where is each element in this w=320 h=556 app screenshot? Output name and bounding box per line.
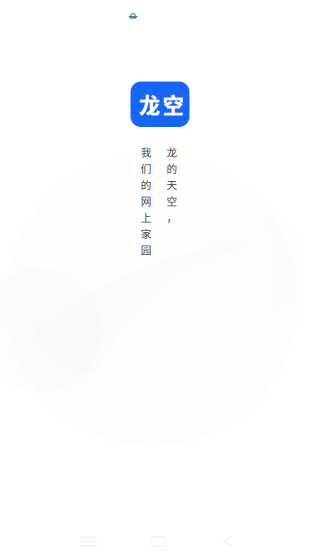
staticText: 天 (166, 177, 177, 192)
staticText: 网 (141, 193, 152, 208)
staticText: 们 (141, 160, 152, 176)
staticText: 家 (141, 226, 152, 241)
staticText: 的 (166, 160, 177, 176)
staticText: 园 (141, 242, 152, 257)
staticText: 龙 (166, 144, 177, 159)
staticText: 我 (141, 144, 152, 159)
staticText: 的 (141, 177, 152, 192)
staticText: 空 (166, 193, 177, 208)
staticText: 上 (141, 209, 152, 225)
staticText: 龙空 (139, 89, 183, 120)
button[interactable]: Recents (66, 526, 110, 556)
staticText: ， (166, 209, 177, 225)
